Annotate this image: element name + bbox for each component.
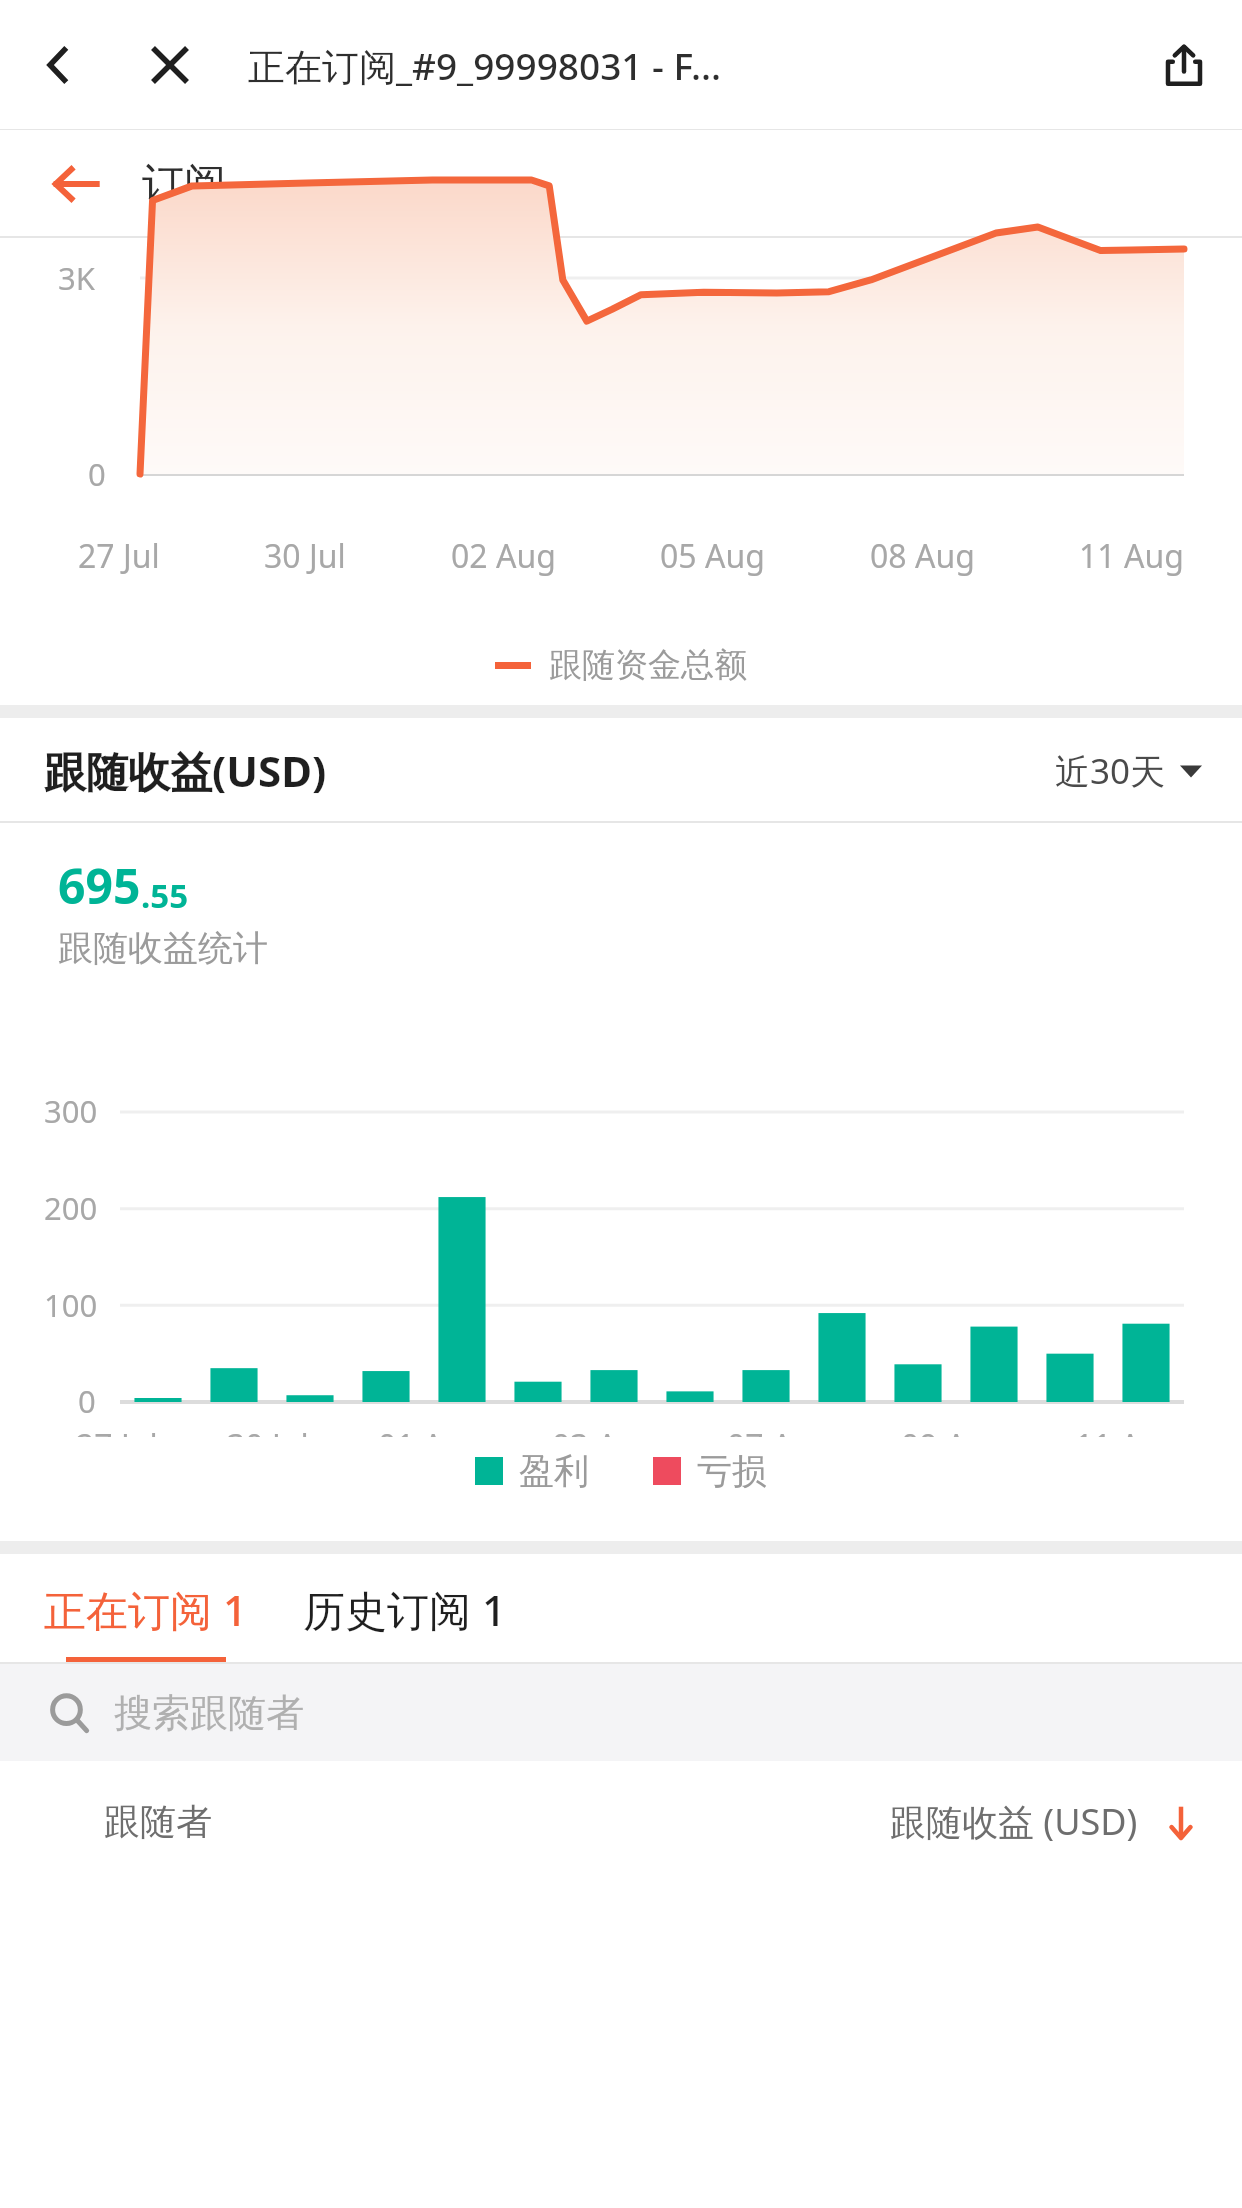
staticText: 3K bbox=[58, 257, 95, 299]
button[interactable]: Back bbox=[22, 29, 94, 101]
staticText: 0 bbox=[78, 1380, 96, 1422]
staticText: 正在订阅_#9_99998031 - F... bbox=[248, 40, 722, 91]
staticText: 695 bbox=[58, 853, 141, 918]
staticText: 200 bbox=[44, 1187, 98, 1229]
staticText: 27 Jul bbox=[78, 534, 160, 578]
button[interactable]: 搜索跟随者 bbox=[0, 1664, 1242, 1761]
button[interactable]: 历史订阅 1 bbox=[303, 1581, 506, 1638]
button[interactable]: Share bbox=[1148, 29, 1220, 101]
staticText: 盈利 bbox=[519, 1449, 589, 1493]
staticText: 02 Aug bbox=[451, 534, 556, 578]
staticText: 09 Aug bbox=[901, 1424, 1006, 1437]
staticText: 30 Jul bbox=[264, 534, 346, 578]
staticText: 历史订阅 1 bbox=[303, 1581, 506, 1638]
staticText: 03 Aug bbox=[552, 1424, 657, 1437]
staticText: 0 bbox=[88, 453, 106, 495]
staticText: 07 Aug bbox=[727, 1424, 832, 1437]
button[interactable]: 正在订阅 1 bbox=[44, 1581, 247, 1638]
staticText: 30 Jul bbox=[227, 1424, 309, 1437]
staticText: 08 Aug bbox=[870, 534, 975, 578]
staticText: 300 bbox=[44, 1090, 98, 1132]
staticText: .55 bbox=[141, 873, 189, 918]
staticText: 跟随资金总额 bbox=[549, 644, 747, 686]
button[interactable]: Close bbox=[134, 29, 206, 101]
staticText: 05 Aug bbox=[660, 534, 765, 578]
staticText: 跟随者 bbox=[104, 1799, 212, 1844]
staticText: 跟随收益 (USD) bbox=[890, 1797, 1138, 1846]
staticText: 01 Aug bbox=[378, 1424, 483, 1437]
button[interactable]: Back bbox=[44, 152, 108, 216]
staticText: 11 Aug bbox=[1079, 534, 1184, 578]
staticText: 搜索跟随者 bbox=[114, 1689, 304, 1737]
staticText: 27 Jul bbox=[76, 1424, 158, 1437]
staticText: 近30天 bbox=[1055, 747, 1166, 795]
button[interactable]: 跟随收益(USD) bbox=[0, 718, 1242, 823]
staticText: 跟随收益统计 bbox=[58, 926, 268, 970]
staticText: 100 bbox=[44, 1284, 98, 1326]
staticText: 亏损 bbox=[697, 1449, 767, 1493]
staticText: 订阅 bbox=[142, 158, 226, 211]
staticText: 正在订阅 1 bbox=[44, 1581, 247, 1638]
staticText: 跟随收益(USD) bbox=[44, 742, 327, 799]
staticText: 11 Aug bbox=[1075, 1424, 1180, 1437]
button[interactable]: 跟随收益 (USD) bbox=[890, 1797, 1198, 1846]
